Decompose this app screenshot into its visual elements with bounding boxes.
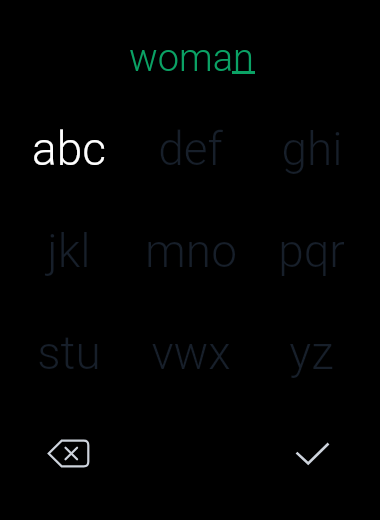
button[interactable]: vwx xyxy=(130,302,251,404)
button[interactable]: jkl xyxy=(8,200,130,302)
staticText: jkl xyxy=(47,224,91,278)
staticText: vwx xyxy=(151,326,231,380)
button[interactable]: Confirm xyxy=(251,395,372,511)
button[interactable]: yz xyxy=(251,302,372,404)
button[interactable]: Backspace xyxy=(8,395,130,511)
button[interactable]: abc xyxy=(8,98,130,200)
staticText: def xyxy=(158,122,223,176)
staticText: mno xyxy=(145,224,237,278)
staticText: woman xyxy=(129,36,254,81)
staticText: abc xyxy=(32,122,106,176)
staticText: yz xyxy=(289,326,334,380)
button[interactable]: mno xyxy=(130,200,251,302)
button[interactable]: pqr xyxy=(251,200,372,302)
button[interactable]: ghi xyxy=(251,98,372,200)
staticText: ghi xyxy=(281,122,343,176)
button[interactable]: def xyxy=(130,98,251,200)
staticText: pqr xyxy=(278,224,345,278)
staticText: stu xyxy=(37,326,101,380)
button[interactable]: stu xyxy=(8,302,130,404)
